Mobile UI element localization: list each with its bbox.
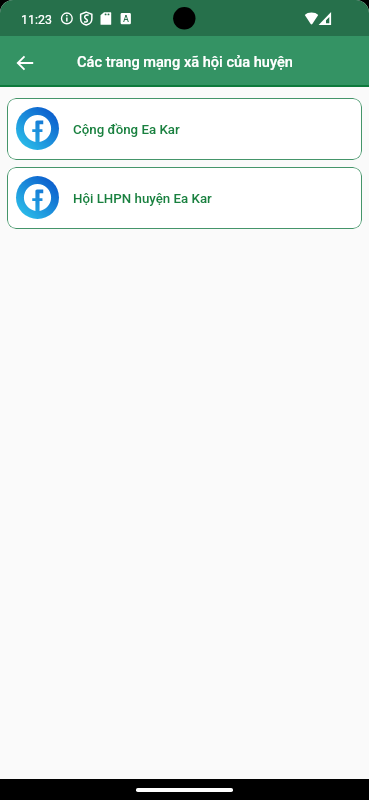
staticText: 11:23 (21, 12, 52, 27)
button[interactable]: Hội LHPN huyện Ea Kar (7, 167, 362, 229)
button[interactable]: Back (5, 42, 45, 82)
staticText: Hội LHPN huyện Ea Kar (73, 191, 212, 207)
staticText: Cộng đồng Ea Kar (73, 122, 180, 138)
staticText: A (123, 14, 129, 25)
staticText: Các trang mạng xã hội của huyện (77, 53, 293, 70)
button[interactable]: Cộng đồng Ea Kar (7, 98, 362, 160)
